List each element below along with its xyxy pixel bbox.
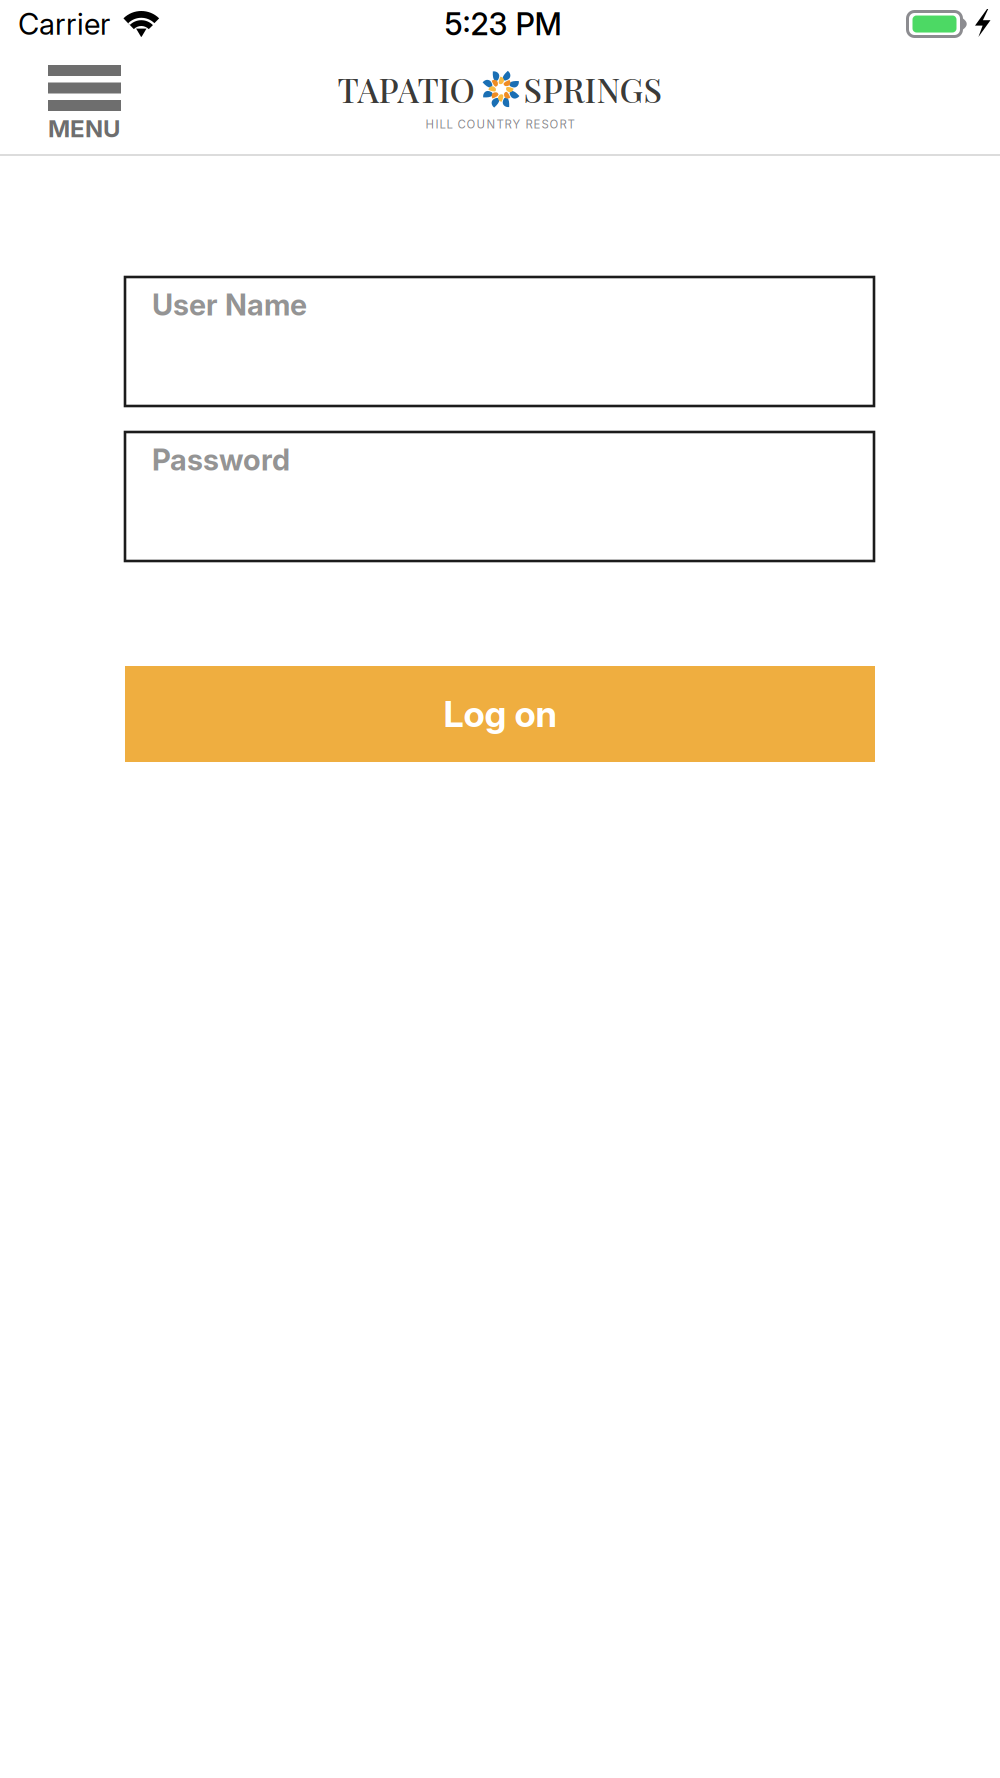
staticText: Carrier — [18, 6, 110, 42]
staticText: 5:23 PM — [444, 5, 561, 42]
staticText: MENU — [48, 114, 120, 143]
staticText: Log on — [443, 692, 556, 736]
staticText: User Name — [152, 287, 307, 322]
button[interactable]: Password — [125, 432, 874, 561]
staticText: Password — [152, 442, 290, 477]
staticText: TAPATIO — [337, 67, 474, 111]
button[interactable]: Log on — [125, 666, 875, 762]
button[interactable]: Menu — [34, 53, 135, 151]
staticText: SPRINGS — [523, 67, 662, 111]
button[interactable]: User Name — [125, 277, 874, 406]
staticText: H I L L C O U N T R Y R E S O R T — [425, 117, 574, 131]
